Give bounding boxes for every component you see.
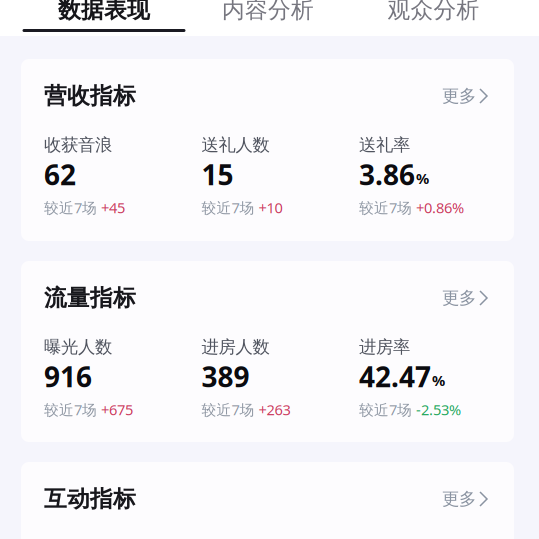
staticText: 进房率 (359, 336, 410, 358)
staticText: 389 (201, 358, 249, 395)
staticText: 送礼人数 (201, 134, 269, 156)
staticText: 流量指标 (44, 284, 136, 312)
staticText: 收获音浪 (44, 134, 112, 156)
button[interactable]: 观众分析 (328, 0, 539, 36)
button[interactable]: 更多 (442, 286, 488, 310)
staticText: +0.86% (416, 198, 464, 217)
staticText: 曝光人数 (44, 336, 112, 358)
staticText: 进房人数 (201, 336, 269, 358)
staticText: 较近7场 (359, 400, 412, 419)
staticText: 916 (44, 358, 92, 395)
staticText: 更多 (442, 85, 476, 107)
staticText: 更多 (442, 287, 476, 309)
staticText: 观众分析 (387, 0, 479, 24)
staticText: 更多 (442, 488, 476, 510)
staticText: 互动指标 (44, 485, 136, 513)
staticText: % (416, 169, 429, 188)
staticText: % (432, 371, 445, 390)
staticText: +263 (258, 400, 290, 419)
staticText: 较近7场 (359, 198, 412, 217)
staticText: 数据表现 (58, 0, 150, 24)
button[interactable]: 内容分析 (208, 0, 328, 36)
staticText: 营收指标 (44, 82, 136, 110)
staticText: -2.53% (416, 400, 461, 419)
staticText: 较近7场 (201, 198, 254, 217)
button[interactable]: 数据表现 (0, 0, 208, 36)
staticText: 内容分析 (222, 0, 314, 24)
staticText: +45 (101, 198, 125, 217)
staticText: 62 (44, 156, 76, 193)
staticText: 42.47 (359, 358, 431, 395)
staticText: 15 (201, 156, 233, 193)
staticText: 较近7场 (44, 400, 97, 419)
staticText: +675 (101, 400, 133, 419)
staticText: 3.86 (359, 156, 415, 193)
staticText: 较近7场 (201, 400, 254, 419)
button[interactable]: 更多 (442, 487, 488, 511)
button[interactable]: 更多 (442, 84, 488, 108)
staticText: 送礼率 (359, 134, 410, 156)
staticText: 较近7场 (44, 198, 97, 217)
staticText: +10 (258, 198, 282, 217)
